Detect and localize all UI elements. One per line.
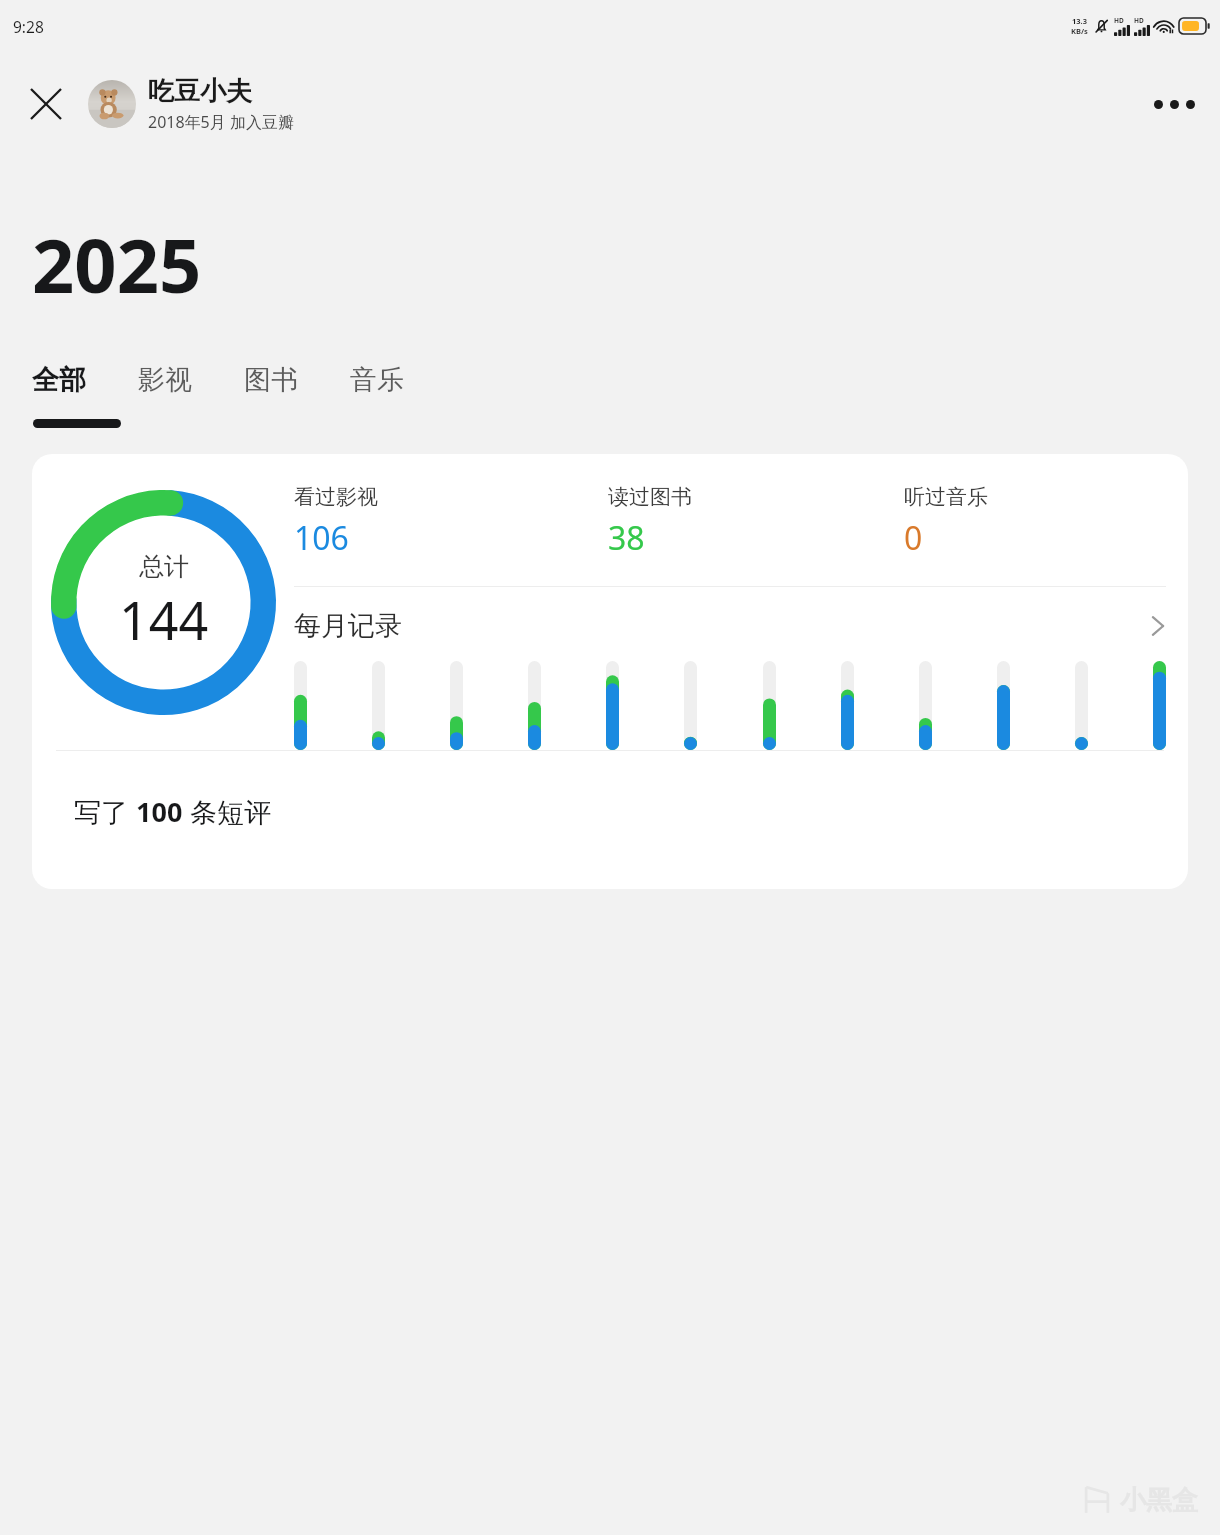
staticText: 音乐 bbox=[350, 363, 404, 397]
button[interactable]: 全部 bbox=[32, 363, 138, 397]
button[interactable]: 总计 bbox=[32, 454, 1188, 889]
staticText: 图书 bbox=[244, 363, 298, 397]
button[interactable]: 看过影视 bbox=[294, 484, 608, 560]
staticText: 吃豆小夫 bbox=[148, 75, 252, 108]
staticText: 每月记录 bbox=[294, 609, 402, 643]
staticText: 106 bbox=[294, 516, 349, 560]
staticText: 2025 bbox=[32, 214, 202, 315]
button[interactable]: 听过音乐 bbox=[904, 484, 1166, 560]
staticText: 38 bbox=[608, 516, 645, 560]
button[interactable]: 读过图书 bbox=[608, 484, 904, 560]
staticText: HD bbox=[1134, 16, 1144, 25]
button[interactable]: 图书 bbox=[244, 363, 350, 397]
staticText: 144 bbox=[119, 584, 209, 655]
staticText: 9:28 bbox=[13, 16, 44, 37]
other: View monthly records bbox=[1150, 613, 1166, 639]
staticText: 看过影视 bbox=[294, 484, 378, 510]
staticText: 2018年5月 加入豆瓣 bbox=[148, 111, 294, 133]
button[interactable]: 影视 bbox=[138, 363, 244, 397]
staticText: 全部 bbox=[32, 363, 86, 397]
staticText: HD bbox=[1114, 16, 1124, 25]
staticText: 0 bbox=[904, 516, 923, 560]
button[interactable]: More options bbox=[1142, 72, 1206, 136]
staticText: 100 bbox=[136, 793, 183, 830]
staticText: KB/s bbox=[1071, 26, 1088, 36]
staticText: 影视 bbox=[138, 363, 192, 397]
staticText: 小黑盒 bbox=[1120, 1484, 1198, 1517]
button[interactable]: 写了 bbox=[32, 751, 1188, 871]
button[interactable]: 音乐 bbox=[350, 363, 404, 397]
button[interactable]: 每月记录 bbox=[294, 609, 1166, 643]
button[interactable]: Profile photo bbox=[88, 80, 136, 128]
staticText: 条短评 bbox=[183, 793, 272, 830]
button[interactable]: Close bbox=[14, 72, 78, 136]
staticText: 总计 bbox=[139, 551, 189, 582]
staticText: 写了 bbox=[74, 793, 136, 830]
staticText: 读过图书 bbox=[608, 484, 692, 510]
staticText: 听过音乐 bbox=[904, 484, 988, 510]
staticText: 13.3 bbox=[1072, 16, 1087, 26]
